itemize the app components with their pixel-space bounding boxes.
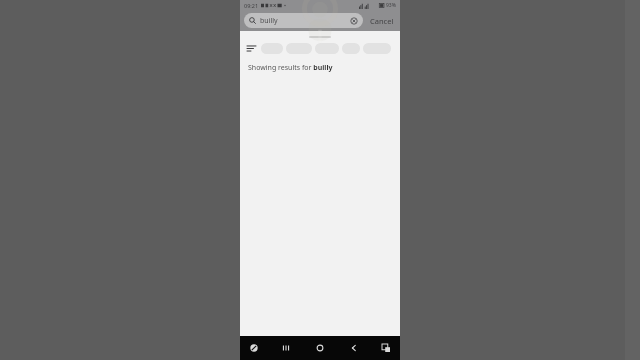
button[interactable]: Filter chip	[315, 43, 339, 54]
button[interactable]: Cancel	[368, 14, 396, 28]
button[interactable]: Filter chip	[261, 43, 283, 54]
button[interactable]: Back	[344, 338, 364, 358]
staticText: 09:21	[244, 2, 259, 9]
staticText: Showing results for builly	[248, 63, 333, 73]
button[interactable]: Filter chip	[363, 43, 391, 54]
button[interactable]: Filter chip	[286, 43, 312, 54]
staticText: 93%	[386, 2, 396, 9]
staticText: builly	[260, 16, 278, 26]
button[interactable]: Clear search	[349, 16, 358, 25]
staticText: Cancel	[370, 16, 394, 26]
button[interactable]: Filters	[245, 42, 257, 54]
button[interactable]: Filter chip	[342, 43, 360, 54]
button[interactable]: Assistant	[246, 340, 262, 356]
button[interactable]: builly	[244, 13, 363, 28]
button[interactable]: Screenshot	[378, 340, 394, 356]
button[interactable]: Home	[310, 338, 330, 358]
button[interactable]: Recents	[276, 338, 296, 358]
